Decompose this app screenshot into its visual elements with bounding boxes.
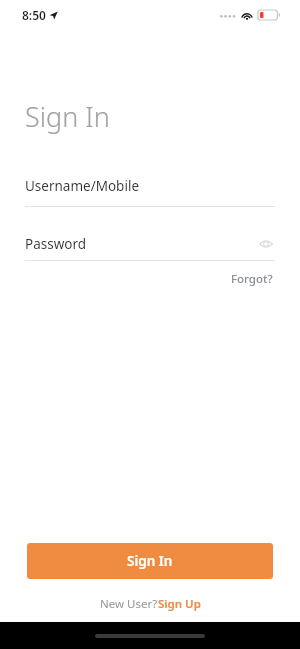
button[interactable]: Show password	[257, 235, 275, 253]
button[interactable]: Forgot?	[229, 269, 275, 289]
button[interactable]: Sign Up	[158, 596, 201, 612]
button[interactable]: Password	[25, 235, 275, 261]
staticText: Username/Mobile	[25, 177, 139, 195]
staticText: Sign In	[25, 98, 110, 135]
staticText: Sign In	[127, 552, 173, 570]
staticText: 8:50	[22, 7, 46, 23]
staticText: Password	[25, 235, 87, 253]
button[interactable]: Sign In	[27, 543, 273, 579]
button[interactable]: Username/Mobile	[25, 177, 275, 207]
staticText: New User?	[100, 596, 158, 612]
staticText: Sign Up	[158, 596, 201, 612]
staticText: Forgot?	[231, 271, 273, 287]
